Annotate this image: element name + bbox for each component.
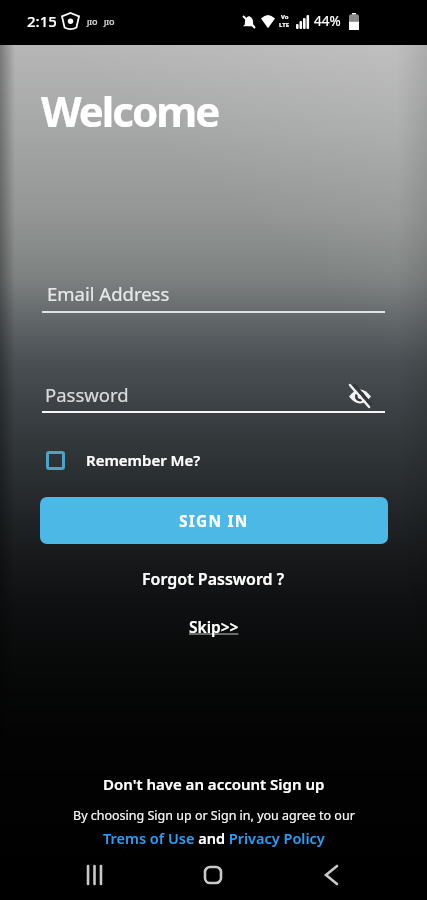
staticText: JIO <box>104 18 115 28</box>
button[interactable]: Don't have an account Sign up <box>103 774 325 794</box>
staticText: Password <box>45 382 129 407</box>
staticText: LTE <box>279 21 290 29</box>
staticText: Remember Me? <box>86 450 201 470</box>
staticText: Welcome <box>41 82 219 139</box>
staticText: 2:15 <box>27 11 57 31</box>
button[interactable]: Forgot Password ? <box>142 568 285 590</box>
staticText: SIGN IN <box>179 510 249 531</box>
button[interactable]: Trems of Use and Privacy Policy <box>103 828 325 848</box>
button[interactable] <box>326 866 337 884</box>
staticText: JIO <box>87 18 98 28</box>
button[interactable]: SIGN IN <box>40 497 388 544</box>
staticText: By choosing Sign up or Sign in, you agre… <box>73 807 355 824</box>
staticText: Vo <box>281 13 289 21</box>
staticText: 44% <box>314 12 341 30</box>
button[interactable]: Skip>> <box>189 616 239 637</box>
button[interactable]: Remember Me? <box>46 450 201 470</box>
button[interactable] <box>348 384 372 408</box>
staticText: Email Address <box>47 281 170 306</box>
button[interactable] <box>204 866 222 884</box>
button[interactable] <box>86 866 103 884</box>
